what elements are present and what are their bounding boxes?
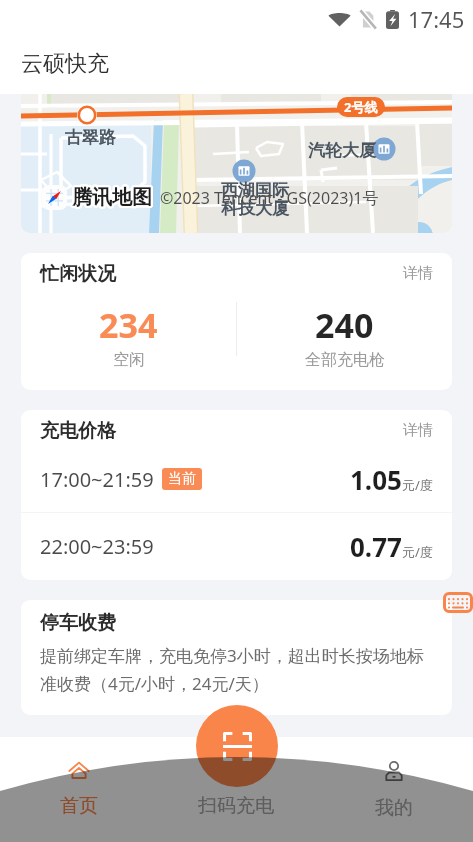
staticText: 腾讯地图: [70, 184, 150, 209]
staticText: 17:45: [408, 4, 465, 34]
staticText: 腾讯地图: [72, 185, 152, 210]
staticText: 腾讯地图: [71, 186, 151, 211]
staticText: 忙闲状况: [40, 262, 116, 286]
staticText: 0.77: [350, 529, 402, 564]
staticText: 22:00~23:59: [40, 533, 154, 560]
staticText: 我的: [375, 796, 413, 820]
staticText: 腾讯地图: [73, 183, 153, 208]
staticText: 西湖国际: [221, 180, 289, 201]
staticText: 腾讯地图: [72, 185, 152, 210]
staticText: 腾讯地图: [74, 186, 154, 211]
staticText: 详情: [403, 421, 433, 440]
staticText: 古翠路: [65, 127, 116, 148]
staticText: 腾讯地图: [70, 185, 150, 210]
staticText: 全部充电枪: [305, 350, 385, 370]
button[interactable]: 我的: [315, 737, 473, 820]
staticText: 云硕快充: [21, 50, 109, 78]
staticText: 首页: [60, 794, 98, 818]
button[interactable]: 扫码充电: [157, 737, 315, 818]
staticText: 腾讯地图: [74, 185, 154, 210]
staticText: 汽轮大厦: [308, 140, 376, 161]
button[interactable]: Keyboard: [443, 592, 473, 613]
staticText: 2号线: [344, 98, 378, 116]
staticText: 腾讯地图: [72, 187, 152, 212]
staticText: 腾讯地图: [73, 186, 153, 211]
staticText: 17:00~21:59: [40, 466, 154, 493]
staticText: 腾讯地图: [71, 187, 151, 212]
staticText: 元/度: [402, 543, 433, 561]
button[interactable]: 详情: [403, 262, 433, 283]
staticText: 腾讯地图: [72, 184, 152, 209]
button[interactable]: 首页: [0, 737, 157, 818]
staticText: 240: [315, 302, 374, 348]
staticText: 腾讯地图: [71, 183, 151, 208]
staticText: 腾讯地图: [72, 183, 152, 208]
staticText: 234: [99, 302, 158, 348]
staticText: 元/度: [402, 476, 433, 494]
staticText: 腾讯地图: [70, 186, 150, 211]
staticText: ©2023 Tencent - GS(2023)1号: [160, 187, 379, 209]
staticText: 充电价格: [40, 419, 116, 443]
staticText: 腾讯地图: [71, 185, 151, 210]
staticText: 当前: [168, 470, 196, 488]
staticText: 详情: [403, 264, 433, 283]
staticText: 腾讯地图: [72, 186, 152, 211]
staticText: 腾讯地图: [73, 187, 153, 212]
staticText: 科技大厦: [221, 198, 289, 219]
staticText: 腾讯地图: [71, 184, 151, 209]
staticText: 扫码充电: [198, 794, 274, 818]
button[interactable]: Map: [21, 94, 452, 233]
staticText: 腾讯地图: [73, 184, 153, 209]
staticText: 1.05: [350, 462, 402, 497]
staticText: 停车收费: [40, 611, 116, 635]
staticText: 腾讯地图: [74, 184, 154, 209]
button[interactable]: Scan to charge: [196, 705, 278, 787]
button[interactable]: 详情: [403, 419, 433, 440]
staticText: 腾讯地图: [73, 185, 153, 210]
staticText: 提前绑定车牌，充电免停3小时，超出时长按场地标准收费（4元/小时，24元/天）: [40, 644, 433, 695]
staticText: 空闲: [113, 350, 145, 370]
